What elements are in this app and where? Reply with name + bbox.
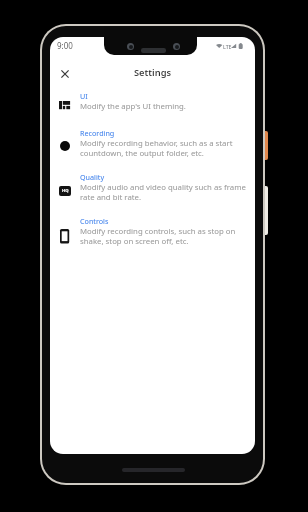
staticText: Modify recording controls, such as stop …	[80, 226, 236, 237]
button[interactable]: HQ	[54, 172, 251, 208]
button[interactable]	[57, 66, 73, 82]
button[interactable]: Controls	[54, 216, 251, 252]
staticText: Recording	[80, 128, 115, 138]
button[interactable]: UI	[54, 91, 251, 117]
staticText: shake, stop on screen off, etc.	[80, 236, 189, 247]
staticText: Quality	[80, 172, 105, 182]
staticText: 9:00	[57, 40, 73, 51]
staticText: LTE	[223, 43, 232, 50]
staticText: rate and bit rate.	[80, 192, 142, 203]
staticText: Modify the app's UI theming.	[80, 101, 186, 112]
staticText: countdown, the output folder, etc.	[80, 148, 204, 159]
staticText: UI	[80, 91, 88, 101]
staticText: HQ	[62, 188, 69, 194]
staticText: Modify audio and video quality such as f…	[80, 182, 246, 193]
staticText: Settings	[50, 66, 255, 79]
button[interactable]: Recording	[54, 128, 251, 164]
staticText: Controls	[80, 216, 109, 226]
staticText: Modify recording behavior, such as a sta…	[80, 138, 233, 149]
